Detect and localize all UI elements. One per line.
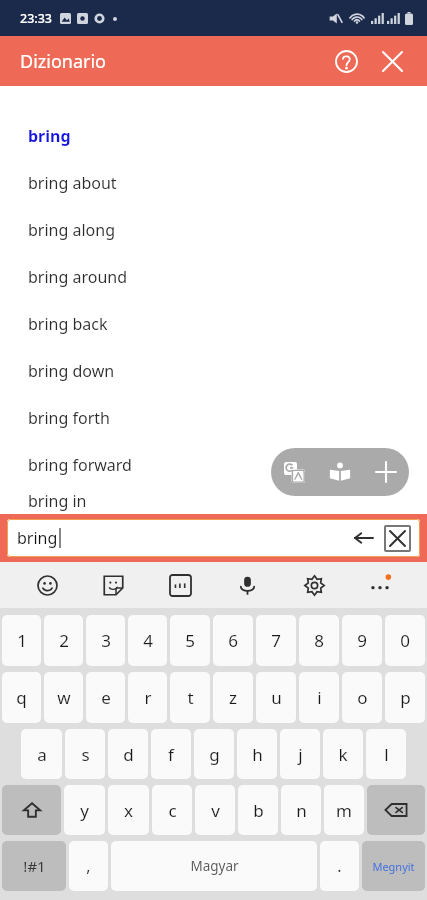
button[interactable]: Voice input (227, 565, 267, 605)
button[interactable]: o (342, 672, 382, 723)
staticText: bring forth (28, 407, 110, 429)
button[interactable]: r (128, 672, 167, 723)
button[interactable]: bring down (0, 347, 427, 394)
button[interactable]: bring in (0, 488, 427, 514)
button[interactable]: bring forth (0, 394, 427, 441)
button[interactable]: w (44, 672, 83, 723)
button[interactable]: Backspace (367, 785, 425, 835)
button[interactable]: Add (363, 449, 409, 495)
button[interactable]: d (108, 729, 148, 779)
button[interactable]: 1 (2, 615, 41, 666)
button[interactable]: 4 (128, 615, 167, 666)
button[interactable]: Megnyit (362, 841, 425, 891)
staticText: h (252, 743, 263, 766)
button[interactable]: t (170, 672, 210, 723)
staticText: r (144, 686, 152, 709)
button[interactable]: j (280, 729, 320, 779)
button[interactable]: 6 (213, 615, 253, 666)
staticText: x (124, 799, 133, 822)
button[interactable]: 9 (342, 615, 382, 666)
button[interactable]: bring (7, 519, 344, 557)
button[interactable]: u (256, 672, 296, 723)
button[interactable]: Settings (294, 565, 334, 605)
button[interactable]: Back (344, 519, 384, 557)
button[interactable]: Clear (384, 525, 411, 552)
staticText: d (123, 743, 134, 766)
staticText: Magyar (190, 857, 239, 875)
button[interactable]: Stickers (93, 565, 133, 605)
button[interactable]: q (2, 672, 41, 723)
staticText: bring along (28, 219, 115, 241)
button[interactable]: b (238, 785, 278, 835)
button[interactable]: 2 (44, 615, 83, 666)
staticText: g (209, 743, 220, 766)
button[interactable]: GIF (160, 565, 200, 605)
button[interactable]: More options (360, 565, 400, 605)
button[interactable]: k (323, 729, 363, 779)
button[interactable]: bring back (0, 300, 427, 347)
button[interactable]: Magyar (111, 841, 317, 891)
button[interactable]: y (64, 785, 105, 835)
staticText: a (37, 743, 47, 766)
button[interactable]: !#1 (2, 841, 66, 891)
staticText: 8 (314, 629, 324, 652)
staticText: Dizionario (20, 49, 106, 74)
button[interactable]: z (213, 672, 253, 723)
staticText: n (296, 799, 307, 822)
staticText: e (101, 686, 111, 709)
button[interactable]: Dictionary (317, 449, 363, 495)
staticText: 2 (59, 629, 69, 652)
button[interactable]: v (195, 785, 235, 835)
button[interactable]: bring around (0, 253, 427, 300)
staticText: bring in (28, 490, 87, 512)
button[interactable]: 7 (256, 615, 296, 666)
staticText: q (16, 686, 27, 709)
staticText: k (338, 743, 348, 766)
button[interactable]: f (151, 729, 191, 779)
button[interactable]: e (86, 672, 125, 723)
button[interactable]: bring along (0, 206, 427, 253)
staticText: , (86, 855, 91, 877)
button[interactable]: l (366, 729, 406, 779)
button[interactable]: Shift (2, 785, 61, 835)
staticText: u (271, 686, 282, 709)
button[interactable]: bring about (0, 159, 427, 206)
button[interactable]: Close (369, 38, 415, 84)
button[interactable]: s (65, 729, 105, 779)
staticText: o (357, 686, 368, 709)
staticText: bring (28, 125, 71, 147)
button[interactable]: 0 (385, 615, 425, 666)
button[interactable]: Help (323, 38, 369, 84)
button[interactable]: . (320, 841, 359, 891)
button[interactable]: Translate (271, 449, 317, 495)
button[interactable]: Emoji (27, 565, 67, 605)
button[interactable]: g (194, 729, 234, 779)
button[interactable]: bring (0, 112, 427, 159)
staticText: 23:33 (20, 10, 53, 27)
staticText: z (229, 686, 237, 709)
staticText: c (168, 799, 177, 822)
button[interactable]: n (281, 785, 321, 835)
staticText: Megnyit (372, 859, 415, 874)
button[interactable]: p (385, 672, 425, 723)
button[interactable]: , (69, 841, 108, 891)
staticText: bring (17, 527, 58, 549)
staticText: l (384, 743, 389, 766)
button[interactable]: m (324, 785, 364, 835)
button[interactable]: h (237, 729, 277, 779)
button[interactable]: 5 (170, 615, 210, 666)
button[interactable]: c (152, 785, 192, 835)
button[interactable]: i (299, 672, 339, 723)
button[interactable]: a (21, 729, 62, 779)
staticText: 0 (400, 629, 410, 652)
staticText: 1 (17, 629, 27, 652)
button[interactable]: x (108, 785, 149, 835)
button[interactable]: 8 (299, 615, 339, 666)
staticText: w (57, 686, 71, 709)
staticText: bring forward (28, 454, 132, 476)
button[interactable]: bring forward (0, 441, 427, 488)
staticText: i (317, 686, 322, 709)
staticText: 5 (185, 629, 195, 652)
button[interactable]: 3 (86, 615, 125, 666)
staticText: 3 (101, 629, 111, 652)
